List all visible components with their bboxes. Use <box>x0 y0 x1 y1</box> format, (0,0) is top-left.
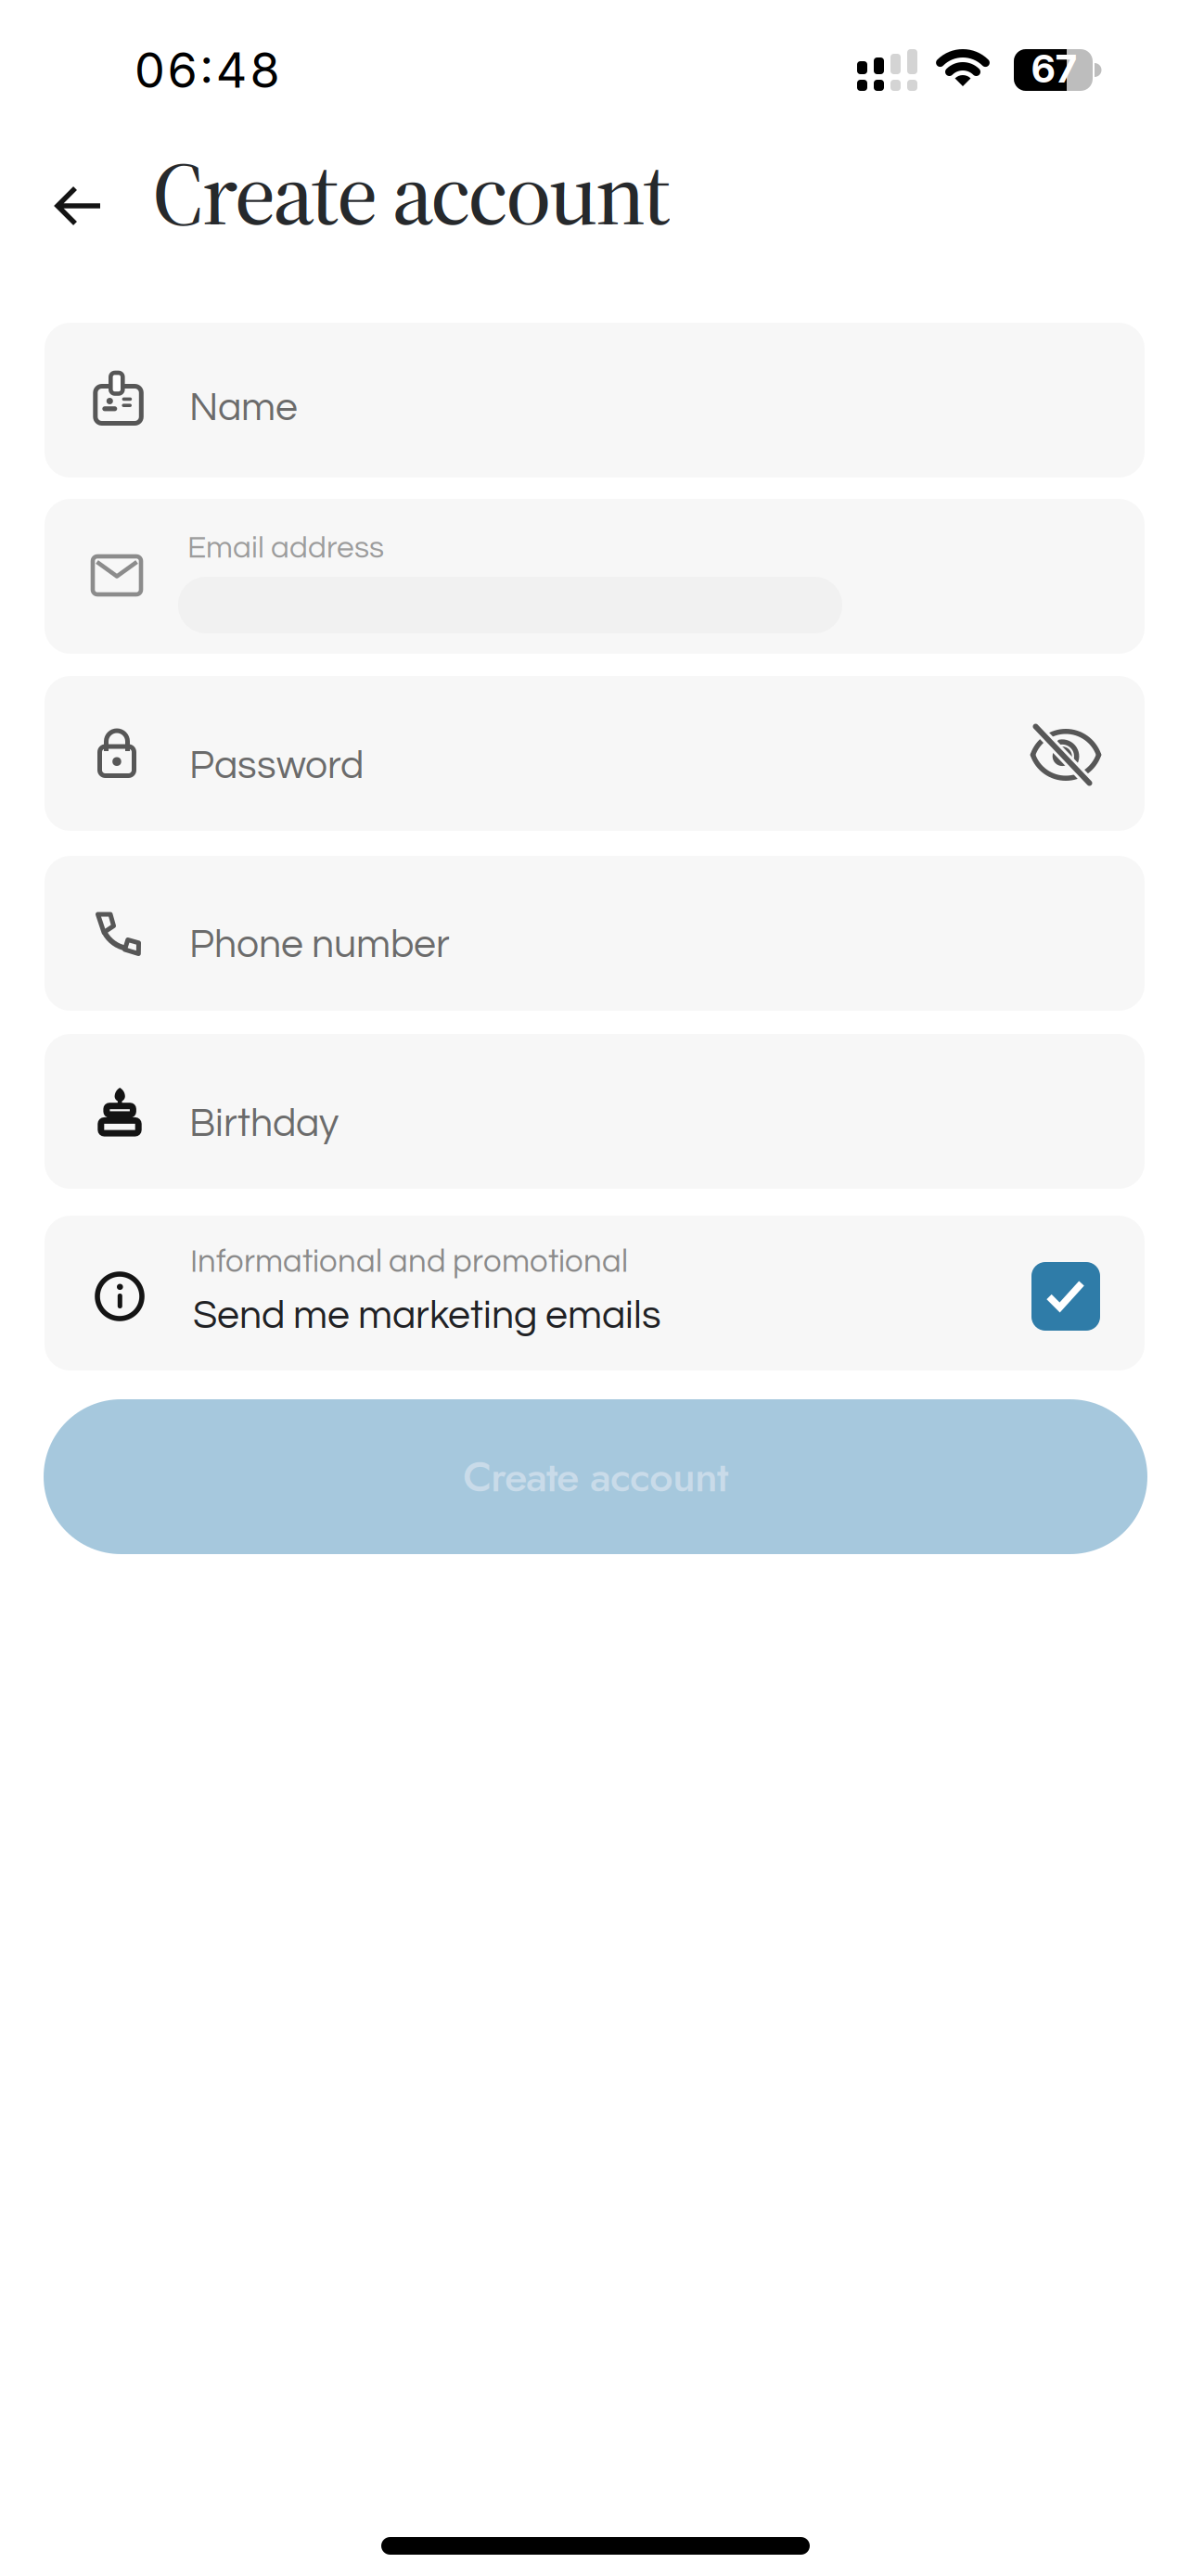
staticText: Create account <box>463 1446 728 1507</box>
staticText: Send me marketing emails <box>193 1295 661 1336</box>
button[interactable]: Name <box>45 323 1145 478</box>
button[interactable]: Phone number <box>45 856 1145 1011</box>
staticText: Email address <box>187 532 384 564</box>
staticText: 67 <box>1031 45 1077 92</box>
staticText: 06:48 <box>134 41 280 99</box>
button[interactable]: Informational and promotional <box>45 1216 1145 1371</box>
button[interactable]: Send me marketing emails <box>1031 1262 1100 1331</box>
staticText: Password <box>189 746 364 786</box>
button[interactable]: Password <box>45 676 1145 831</box>
staticText: Informational and promotional <box>190 1245 628 1278</box>
button[interactable]: Back <box>46 176 111 236</box>
button[interactable]: Email address <box>45 499 1145 654</box>
button[interactable]: Birthday <box>45 1034 1145 1189</box>
button[interactable]: Create account <box>44 1399 1147 1554</box>
button[interactable]: Show password <box>1032 726 1099 785</box>
staticText: Birthday <box>189 1103 339 1144</box>
staticText: Phone number <box>189 925 450 965</box>
staticText: Create account <box>152 131 671 254</box>
staticText: Name <box>189 388 298 428</box>
